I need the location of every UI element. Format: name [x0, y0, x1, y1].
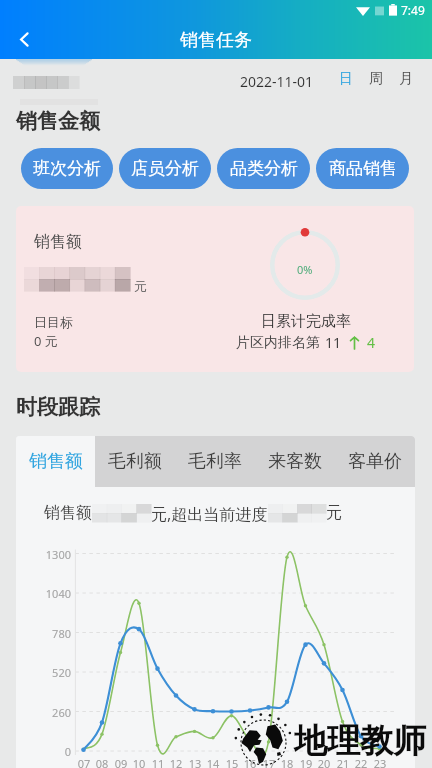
staticText: 品类分析: [230, 158, 298, 179]
button[interactable]: 商品销售: [316, 148, 409, 189]
staticText: 2022-11-01: [240, 72, 314, 91]
staticText: 0 元: [34, 332, 58, 350]
staticText: 14: [203, 756, 223, 768]
staticText: 销售额: [29, 450, 83, 473]
staticText: 7:49: [401, 2, 425, 18]
staticText: 销售额: [34, 232, 82, 252]
staticText: 09: [111, 756, 131, 768]
staticText: 元,超出当前进度: [151, 503, 268, 523]
staticText: 1040: [41, 586, 71, 601]
staticText: 日: [339, 70, 353, 88]
button[interactable]: 销售额: [16, 436, 95, 487]
staticText: 23: [370, 756, 390, 768]
staticText: 0: [41, 744, 71, 759]
staticText: 客单价: [348, 450, 402, 473]
staticText: 时段跟踪: [16, 394, 100, 420]
staticText: 780: [41, 626, 71, 641]
staticText: 毛利率: [188, 450, 242, 473]
staticText: 18: [277, 756, 297, 768]
staticText: 班次分析: [33, 158, 101, 179]
staticText: 07: [74, 756, 94, 768]
staticText: 片区内排名第: [236, 334, 320, 352]
staticText: 16: [240, 756, 260, 768]
staticText: 4: [367, 333, 376, 352]
staticText: 日目标: [34, 314, 73, 330]
staticText: 21: [333, 756, 353, 768]
button[interactable]: 店员分析: [119, 148, 211, 189]
staticText: 来客数: [268, 450, 322, 473]
staticText: 11: [148, 756, 168, 768]
staticText: 08: [92, 756, 112, 768]
staticText: 销售金额: [16, 108, 100, 134]
button[interactable]: Back: [4, 19, 44, 59]
staticText: 13: [185, 756, 205, 768]
staticText: 1300: [41, 547, 71, 562]
staticText: 元: [134, 278, 147, 294]
staticText: 周: [369, 70, 383, 88]
staticText: 商品销售: [329, 158, 397, 179]
staticText: 元: [326, 503, 342, 523]
button[interactable]: 客单价: [335, 436, 415, 487]
staticText: 日累计完成率: [261, 312, 351, 331]
staticText: 销售额: [44, 503, 92, 523]
staticText: 月: [399, 70, 413, 88]
staticText: 520: [41, 665, 71, 680]
staticText: 毛利额: [108, 450, 162, 473]
staticText: 17: [259, 756, 279, 768]
button[interactable]: 来客数: [255, 436, 335, 487]
button[interactable]: 周: [366, 69, 386, 89]
button[interactable]: 日: [336, 69, 356, 89]
button[interactable]: 品类分析: [217, 148, 310, 189]
staticText: 0%: [297, 262, 313, 277]
staticText: 店员分析: [131, 158, 199, 179]
staticText: 15: [222, 756, 242, 768]
staticText: 20: [314, 756, 334, 768]
button[interactable]: 毛利额: [95, 436, 175, 487]
staticText: 12: [166, 756, 186, 768]
staticText: 销售任务: [180, 29, 252, 52]
button[interactable]: 月: [396, 69, 416, 89]
staticText: 19: [296, 756, 316, 768]
button[interactable]: 毛利率: [175, 436, 255, 487]
staticText: 22: [351, 756, 371, 768]
staticText: 10: [129, 756, 149, 768]
button[interactable]: 班次分析: [21, 148, 113, 189]
staticText: 260: [41, 705, 71, 720]
staticText: 地理教师: [294, 720, 426, 762]
staticText: 11: [325, 333, 342, 352]
